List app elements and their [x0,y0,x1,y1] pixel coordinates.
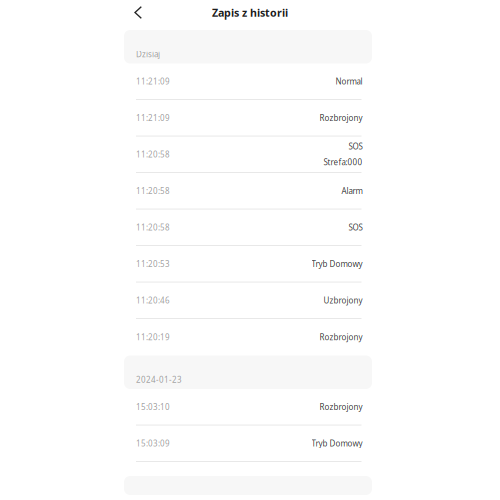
staticText: Dzisiaj [136,49,160,59]
staticText: SOS [348,141,362,152]
staticText: 11:20:46 [136,295,170,306]
button[interactable]: 11:20:58 [124,173,372,209]
button[interactable]: 11:20:46 [124,282,372,319]
button[interactable]: 11:20:58 [124,136,372,173]
staticText: Rozbrojony [319,332,362,342]
staticText: Strefa:000 [323,157,362,167]
staticText: 15:03:09 [136,438,170,449]
button[interactable]: 11:21:09 [124,63,372,100]
staticText: Normal [335,76,362,87]
staticText: Tryb Domowy [311,438,362,449]
staticText: 11:21:09 [136,76,170,87]
staticText: SOS [348,222,362,233]
button[interactable]: Back [133,3,145,21]
staticText: 2024-01-23 [136,374,182,385]
staticText: 11:20:19 [136,332,170,342]
staticText: Zapis z historii [212,5,288,20]
staticText: Rozbrojony [319,401,362,412]
button[interactable]: 11:21:09 [124,100,372,136]
staticText: 11:21:09 [136,112,170,123]
staticText: 11:20:58 [136,149,170,160]
button[interactable]: 11:20:58 [124,209,372,246]
staticText: Alarm [341,185,362,196]
staticText: Tryb Domowy [311,258,362,269]
staticText: 11:20:58 [136,222,170,233]
staticText: Rozbrojony [319,112,362,123]
staticText: 11:20:58 [136,185,170,196]
button[interactable]: 11:20:53 [124,246,372,282]
button[interactable]: 11:20:19 [124,319,372,355]
staticText: 11:20:53 [136,258,170,269]
button[interactable]: 15:03:10 [124,389,372,425]
button[interactable]: 15:03:09 [124,425,372,462]
staticText: 15:03:10 [136,401,170,412]
staticText: Uzbrojony [323,295,362,306]
